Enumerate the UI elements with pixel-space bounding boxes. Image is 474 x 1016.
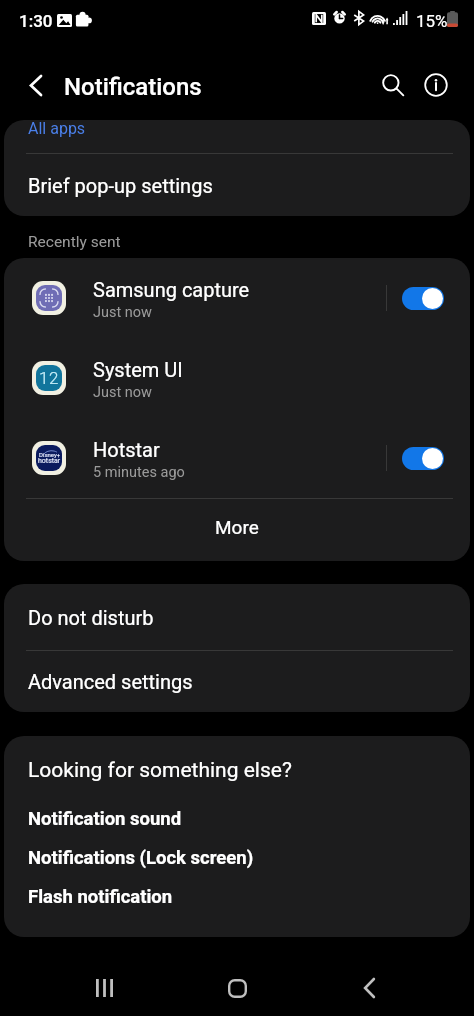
staticText: 12 [39, 368, 59, 388]
staticText: Advanced settings [28, 670, 193, 693]
staticText: Disney+ [39, 451, 61, 458]
button[interactable]: Home [203, 954, 271, 1016]
button[interactable]: Search [371, 63, 415, 107]
button[interactable]: Recent apps [70, 954, 138, 1016]
staticText: Hotstar [93, 438, 160, 461]
staticText: System UI [93, 358, 183, 381]
button[interactable]: Back [335, 954, 403, 1016]
staticText: Notification sound [28, 808, 182, 830]
button[interactable]: Notifications (Lock screen) [4, 838, 470, 877]
staticText: More [215, 516, 259, 538]
staticText: 15% [416, 11, 448, 31]
staticText: Samsung capture [93, 278, 250, 301]
button[interactable]: Toggle notifications [402, 287, 444, 310]
staticText: All apps [28, 120, 86, 138]
staticText: Just now [93, 304, 152, 321]
button[interactable]: Do not disturb [4, 584, 470, 650]
button[interactable]: Disney+ [4, 418, 470, 498]
staticText: Just now [93, 384, 152, 401]
staticText: Recently sent [28, 233, 121, 251]
staticText: Flash notification [28, 886, 173, 908]
button[interactable]: Notification sound [4, 799, 470, 838]
staticText: Notifications [64, 73, 202, 101]
button[interactable]: 12 [4, 338, 470, 418]
staticText: Notifications (Lock screen) [28, 847, 254, 869]
staticText: 5 minutes ago [93, 464, 185, 481]
button[interactable]: Information [414, 63, 458, 107]
button[interactable]: Samsung capture [4, 258, 470, 338]
button[interactable]: Advanced settings [4, 651, 470, 712]
button[interactable]: Flash notification [4, 877, 470, 916]
staticText: Looking for something else? [28, 758, 292, 783]
button[interactable]: Toggle notifications [402, 447, 444, 470]
staticText: Do not disturb [28, 606, 154, 629]
staticText: hotstar [38, 457, 61, 465]
staticText: 1:30 [19, 11, 53, 31]
button[interactable]: Back [16, 65, 56, 105]
button[interactable]: Brief pop-up settings [4, 154, 470, 216]
button[interactable]: More [4, 499, 470, 561]
staticText: Brief pop-up settings [28, 174, 213, 197]
